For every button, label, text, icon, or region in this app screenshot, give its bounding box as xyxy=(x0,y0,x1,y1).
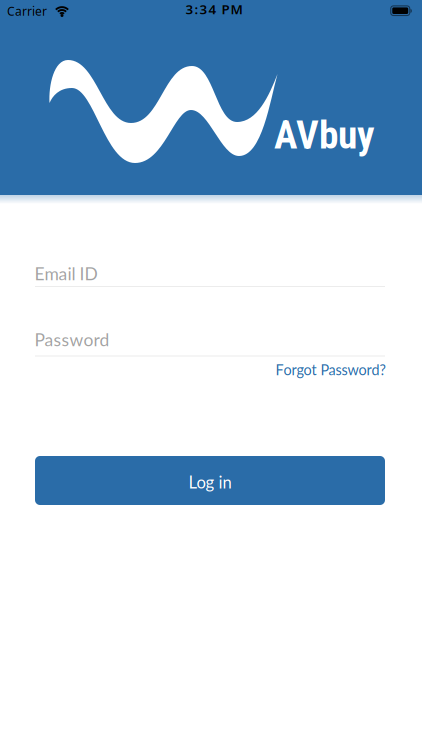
button[interactable]: Password xyxy=(35,328,385,356)
staticText: Password xyxy=(34,329,109,350)
staticText: Log in xyxy=(188,472,231,492)
staticText: Email ID xyxy=(34,263,97,284)
button[interactable]: Forgot Password? xyxy=(275,361,385,378)
button[interactable]: Email ID xyxy=(35,262,385,287)
button[interactable]: Log in xyxy=(35,456,385,505)
staticText: Forgot Password? xyxy=(275,361,385,378)
staticText: AVbuy xyxy=(274,112,375,158)
staticText: Carrier xyxy=(7,3,47,19)
staticText: 3:34 PM xyxy=(185,0,242,18)
